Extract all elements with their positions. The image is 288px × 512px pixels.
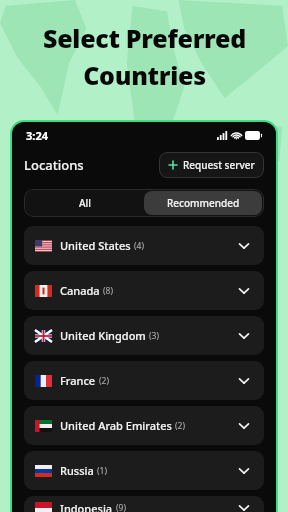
staticText: (8) [103, 285, 113, 297]
button[interactable]: Russia [24, 451, 264, 490]
other: Expand Indonesia [235, 499, 253, 512]
staticText: (2) [99, 375, 109, 387]
staticText: Locations [24, 156, 84, 174]
other: Expand France [235, 372, 253, 390]
staticText: Russia [60, 463, 94, 478]
other: Expand Canada [235, 282, 253, 300]
staticText: (1) [97, 465, 107, 477]
staticText: (9) [116, 502, 126, 512]
button[interactable]: All [26, 191, 144, 215]
staticText: All [79, 196, 91, 210]
staticText: Recommended [167, 196, 240, 210]
button[interactable]: Canada [24, 271, 264, 310]
other: Expand Russia [235, 462, 253, 480]
button[interactable]: Request server [159, 152, 264, 178]
staticText: Canada [60, 283, 100, 298]
staticText: Indonesia [60, 501, 113, 512]
button[interactable]: Recommended [144, 191, 262, 215]
staticText: (4) [134, 240, 144, 252]
staticText: Select Preferred [43, 21, 246, 55]
button[interactable]: United Arab Emirates [24, 406, 264, 445]
staticText: (3) [149, 330, 159, 342]
staticText: Request server [183, 158, 255, 172]
staticText: United Kingdom [60, 328, 146, 343]
staticText: 3:24 [26, 128, 48, 143]
button[interactable]: United Kingdom [24, 316, 264, 355]
button[interactable]: France [24, 361, 264, 400]
other: Expand United Arab Emirates [235, 417, 253, 435]
staticText: France [60, 373, 96, 388]
other: Expand United States [235, 237, 253, 255]
staticText: United States [60, 238, 131, 253]
staticText: (2) [175, 420, 185, 432]
staticText: Countries [83, 58, 206, 92]
staticText: United Arab Emirates [60, 418, 172, 433]
other: Expand United Kingdom [235, 327, 253, 345]
button[interactable]: United States [24, 226, 264, 265]
button[interactable]: Indonesia [24, 496, 264, 512]
